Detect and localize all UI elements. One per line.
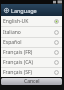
button[interactable]: English-UK [1, 16, 62, 26]
staticText: Français (SF) [3, 69, 54, 76]
button[interactable]: Français (CA) [1, 58, 62, 67]
staticText: Français (CA) [3, 59, 54, 66]
button[interactable]: Cancel [1, 78, 62, 85]
button[interactable]: Español [1, 38, 62, 47]
staticText: Italiano [3, 29, 54, 36]
staticText: Language [11, 7, 37, 14]
staticText: Español [3, 39, 54, 46]
button[interactable]: Italiano [1, 27, 62, 37]
staticText: English-UK [3, 18, 54, 25]
staticText: Cancel [24, 78, 40, 85]
button[interactable]: Français (FR) [1, 48, 62, 57]
button[interactable]: Français (SF) [1, 68, 62, 77]
staticText: Français (FR) [3, 49, 54, 56]
